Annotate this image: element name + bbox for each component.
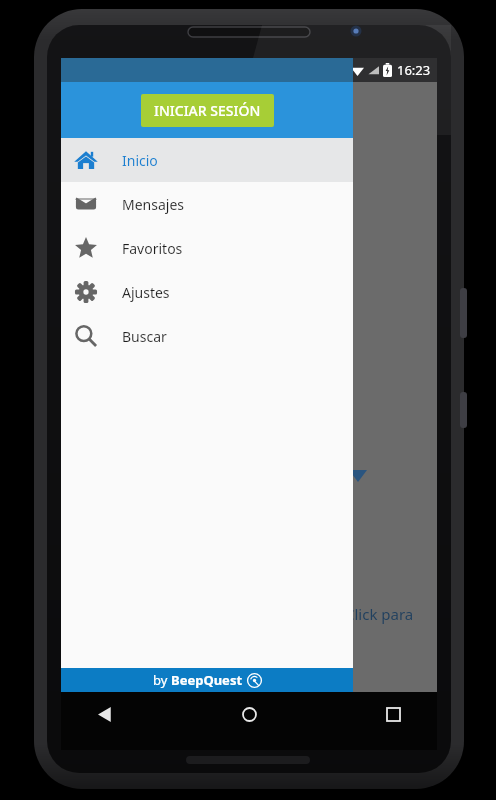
button[interactable]: Mensajes (61, 182, 353, 226)
button[interactable]: Back (83, 692, 127, 736)
button[interactable]: Recent apps (371, 692, 415, 736)
staticText: Click para (345, 604, 414, 624)
staticText: Inicio (122, 151, 158, 170)
staticText: by (153, 671, 171, 689)
staticText: Buscar (122, 327, 167, 346)
button[interactable]: Home (227, 692, 271, 736)
staticText: Ajustes (122, 283, 170, 302)
staticText: Favoritos (122, 239, 183, 258)
staticText: Mensajes (122, 195, 185, 214)
button[interactable]: Favoritos (61, 226, 353, 270)
button[interactable]: Ajustes (61, 270, 353, 314)
staticText: 16:23 (397, 61, 431, 79)
button[interactable]: Buscar (61, 314, 353, 358)
staticText: BeepQuest (171, 671, 243, 689)
button[interactable]: Inicio (61, 138, 353, 182)
staticText: INICIAR SESIÓN (154, 101, 261, 120)
button[interactable]: INICIAR SESIÓN (141, 94, 274, 127)
button[interactable]: by (61, 668, 353, 692)
